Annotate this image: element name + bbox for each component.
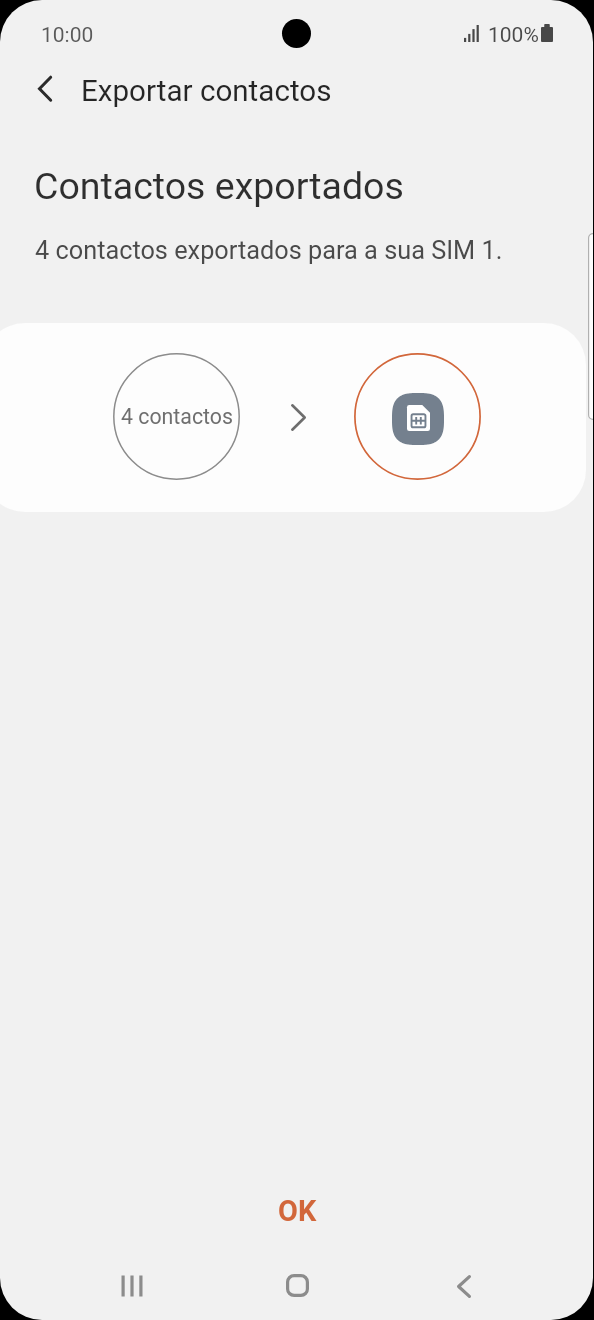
staticText: Exportar contactos [81, 74, 332, 109]
staticText: Contactos exportados [34, 164, 404, 208]
staticText: 100% [488, 23, 539, 48]
staticText: OK [278, 1194, 317, 1228]
button[interactable]: Home [243, 1249, 351, 1320]
button[interactable]: Back [410, 1250, 518, 1320]
staticText: 4 contactos [121, 404, 233, 429]
button[interactable]: Back [20, 66, 70, 116]
staticText: 4 contactos exportados para a sua SIM 1. [35, 236, 503, 266]
button[interactable]: OK [228, 1176, 367, 1246]
button[interactable]: 4 contactos [0, 323, 586, 512]
button[interactable]: Recent apps [78, 1250, 186, 1320]
staticText: 10:00 [41, 23, 94, 48]
